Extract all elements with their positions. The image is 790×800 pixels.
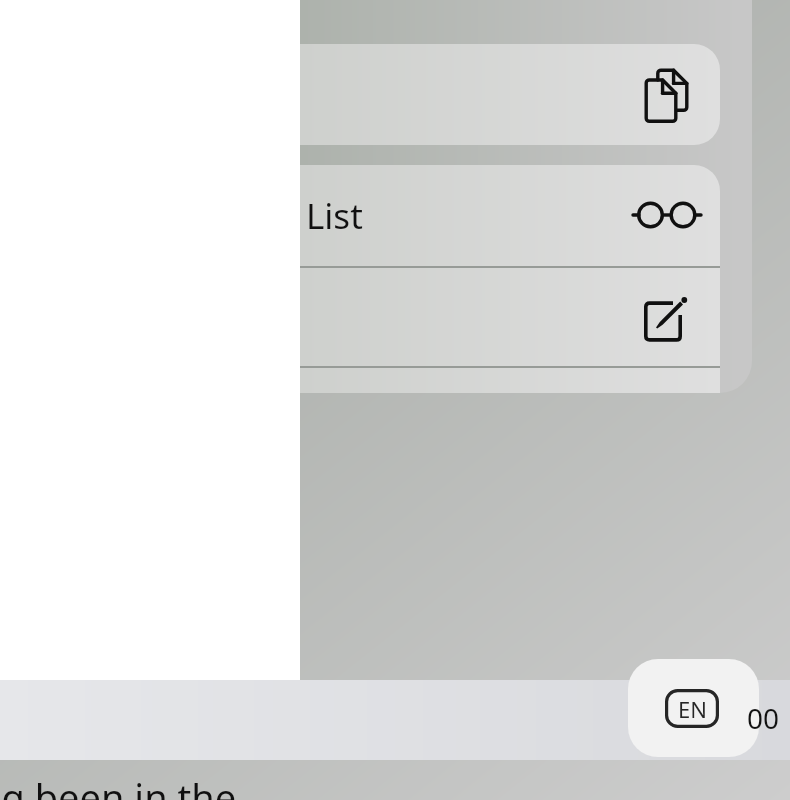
staticText: List xyxy=(306,192,363,240)
button[interactable]: EN xyxy=(628,659,759,757)
button[interactable]: Duplicate xyxy=(640,62,692,128)
staticText: EN xyxy=(678,694,707,724)
button[interactable]: Reading mode xyxy=(628,196,706,236)
button[interactable] xyxy=(300,44,720,145)
staticText: 00 xyxy=(747,699,780,737)
button[interactable] xyxy=(300,268,720,366)
button[interactable] xyxy=(300,368,720,393)
staticText: ng been in the xyxy=(0,771,237,800)
button[interactable]: List xyxy=(300,165,720,266)
button[interactable]: Edit xyxy=(638,294,692,346)
